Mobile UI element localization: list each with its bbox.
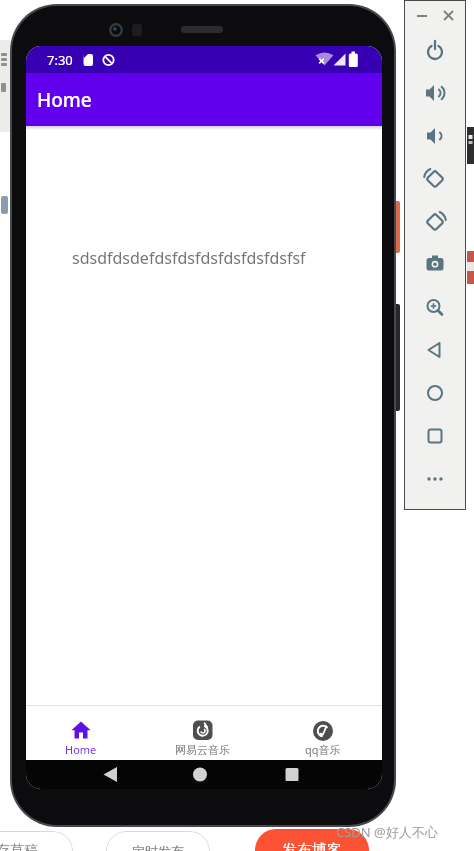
button[interactable]: Home: [36, 705, 126, 760]
button[interactable]: [405, 75, 465, 111]
button[interactable]: [405, 290, 465, 326]
button[interactable]: [405, 118, 465, 154]
button[interactable]: [437, 6, 459, 26]
button[interactable]: [405, 461, 465, 497]
staticText: 7:30: [47, 51, 73, 68]
button[interactable]: qq音乐: [277, 705, 368, 760]
button[interactable]: 发布博客: [255, 829, 369, 851]
staticText: qq音乐: [305, 742, 341, 757]
button[interactable]: [405, 375, 465, 411]
staticText: 存草稿: [0, 842, 38, 851]
staticText: 网易云音乐: [175, 743, 230, 757]
button[interactable]: 网易云音乐: [157, 705, 248, 760]
button[interactable]: [405, 204, 465, 240]
staticText: Home: [65, 742, 97, 757]
button[interactable]: [270, 760, 314, 789]
button[interactable]: [405, 332, 465, 368]
button[interactable]: 定时发布: [106, 831, 210, 851]
button[interactable]: [410, 6, 432, 26]
button[interactable]: [405, 32, 465, 68]
button[interactable]: 存草稿: [0, 831, 73, 851]
button[interactable]: [178, 760, 222, 789]
staticText: sdsdfdsdefdsfdsfdsfdsfdsfdsfsf: [72, 247, 306, 269]
button[interactable]: [88, 760, 132, 789]
button[interactable]: [405, 418, 465, 454]
staticText: 定时发布: [132, 843, 184, 851]
staticText: 发布博客: [282, 841, 342, 851]
button[interactable]: [405, 246, 465, 282]
staticText: CSDN @好人不心: [336, 823, 438, 841]
button[interactable]: [405, 161, 465, 197]
staticText: Home: [37, 87, 92, 113]
